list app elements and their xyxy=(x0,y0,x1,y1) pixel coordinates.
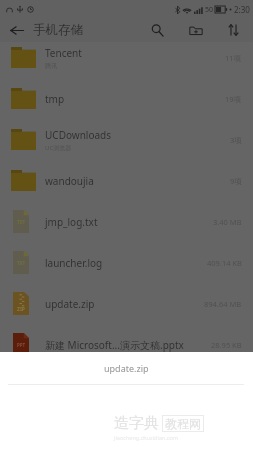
button[interactable]: TXT xyxy=(0,242,253,283)
staticText: jiaocheng.chuzidian.com xyxy=(114,434,178,441)
staticText: update.zip xyxy=(45,297,95,311)
button[interactable]: tmp xyxy=(0,78,253,119)
staticText: wandoujia xyxy=(45,174,94,188)
button[interactable]: Tencent xyxy=(0,37,253,78)
button[interactable]: PPT xyxy=(0,324,253,365)
staticText: tmp xyxy=(45,92,65,106)
staticText: 2:30 xyxy=(234,4,250,15)
staticText: 50 xyxy=(205,5,214,15)
staticText: Tencent xyxy=(45,46,82,60)
button[interactable]: Back xyxy=(3,18,31,42)
staticText: 409.14 KB xyxy=(207,258,242,268)
staticText: update.zip xyxy=(104,362,149,374)
button[interactable]: TXT xyxy=(0,201,253,242)
staticText: 894.64 MB xyxy=(204,299,242,309)
staticText: 9项 xyxy=(230,176,242,186)
staticText: TXT xyxy=(17,260,26,266)
button[interactable]: Sort xyxy=(219,18,247,42)
staticText: 3项 xyxy=(230,135,242,145)
staticText: UCDownloads xyxy=(45,128,111,142)
staticText: 手机存储 xyxy=(33,22,83,38)
button[interactable]: UCDownloads xyxy=(0,119,253,160)
staticText: 腾讯 xyxy=(45,62,57,70)
staticText: TXT xyxy=(17,219,26,225)
staticText: 教程网 xyxy=(165,416,201,431)
button[interactable]: New folder xyxy=(182,18,210,42)
staticText: PPT xyxy=(17,342,26,348)
staticText: launcher.log xyxy=(45,256,103,270)
staticText: 19项 xyxy=(225,94,242,104)
staticText: 11项 xyxy=(225,53,242,63)
button[interactable]: wandoujia xyxy=(0,160,253,201)
staticText: 造字典 xyxy=(114,414,159,433)
staticText: jmp_log.txt xyxy=(45,215,98,229)
button[interactable]: ZIP xyxy=(0,283,253,324)
staticText: UC浏览器 xyxy=(45,144,72,152)
staticText: ZIP xyxy=(17,306,25,313)
staticText: 28.95 KB xyxy=(211,340,242,350)
staticText: 3.40 MB xyxy=(213,217,242,227)
button[interactable]: Search xyxy=(143,18,171,42)
staticText: 新建 Microsoft...演示文稿.pptx xyxy=(45,338,184,352)
